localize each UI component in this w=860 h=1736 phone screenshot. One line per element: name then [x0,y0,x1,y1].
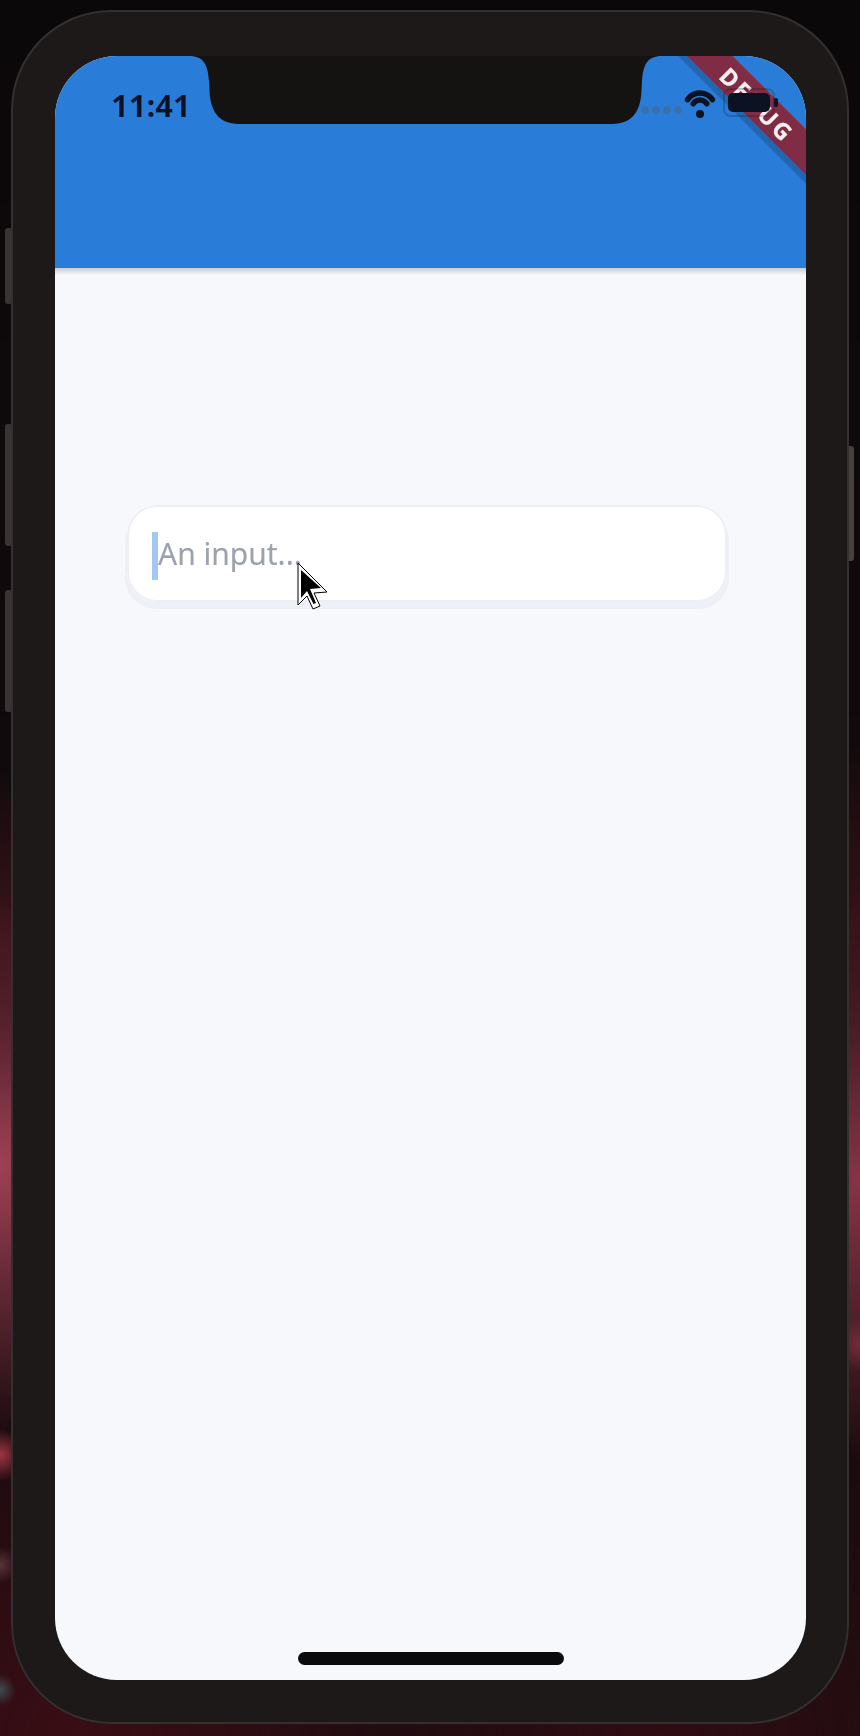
button[interactable] [55,56,806,268]
button[interactable]: An input... [127,505,727,602]
staticText: An input... [158,533,302,574]
staticText: 11:41 [111,84,191,126]
staticText: DEBUG [713,60,803,149]
